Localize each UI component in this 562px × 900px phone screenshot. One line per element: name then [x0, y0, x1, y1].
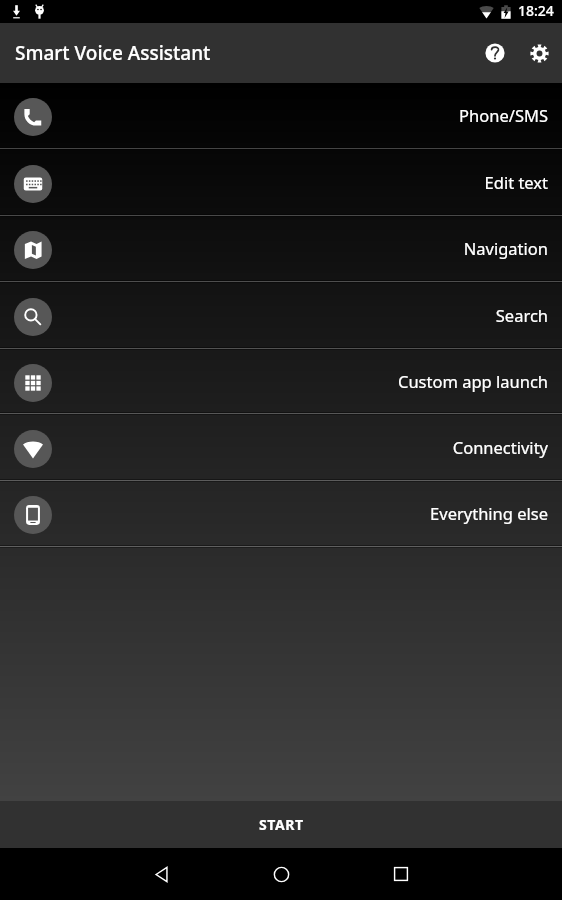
staticText: Edit text	[484, 171, 548, 193]
button[interactable]: START	[0, 801, 562, 848]
button[interactable]: Navigation	[0, 217, 562, 283]
staticText: Phone/SMS	[459, 104, 548, 126]
button[interactable]: Settings	[517, 23, 562, 83]
button[interactable]: Phone/SMS	[0, 83, 562, 150]
staticText: Custom app launch	[397, 370, 548, 392]
button[interactable]: Search	[0, 283, 562, 350]
button[interactable]: Connectivity	[0, 415, 562, 482]
staticText: Connectivity	[452, 436, 548, 458]
staticText: 18:24	[518, 1, 554, 20]
button[interactable]: Recents	[361, 848, 440, 900]
staticText: Search	[495, 304, 548, 326]
button[interactable]: Edit text	[0, 150, 562, 217]
button[interactable]: Back	[122, 848, 201, 900]
button[interactable]: Custom app launch	[0, 350, 562, 415]
staticText: Everything else	[430, 502, 548, 524]
staticText: Navigation	[463, 237, 548, 259]
staticText: Smart Voice Assistant	[15, 40, 211, 66]
staticText: START	[259, 815, 304, 834]
button[interactable]: Everything else	[0, 482, 562, 548]
button[interactable]: Help	[472, 23, 517, 83]
button[interactable]: Home	[201, 848, 361, 900]
